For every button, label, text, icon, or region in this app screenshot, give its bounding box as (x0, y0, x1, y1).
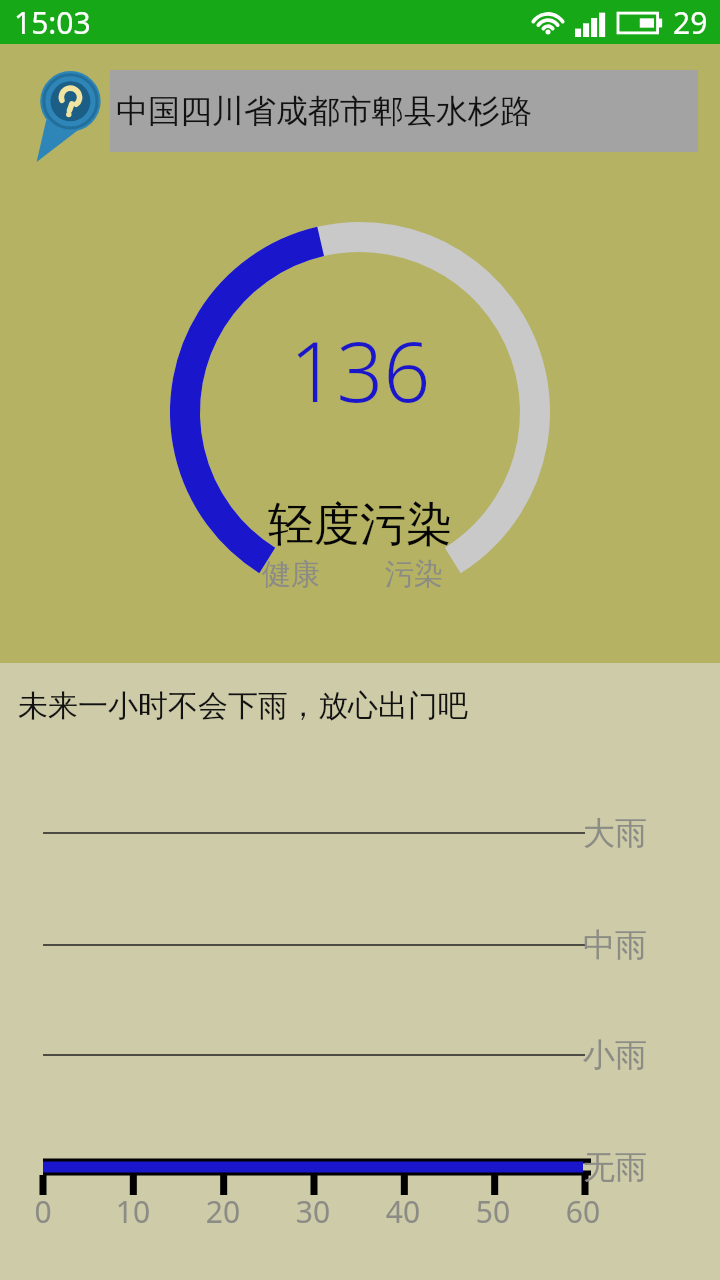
staticText: 污染 (385, 556, 443, 593)
button[interactable]: Location (33, 66, 105, 164)
staticText: 无雨 (583, 1147, 647, 1187)
staticText: 136 (170, 314, 550, 426)
staticText: 50 (471, 1191, 515, 1232)
staticText: 小雨 (583, 1035, 647, 1075)
staticText: 大雨 (583, 813, 647, 853)
staticText: 40 (381, 1191, 425, 1232)
staticText: 轻度污染 (170, 496, 550, 554)
staticText: 29 (673, 2, 708, 43)
staticText: 10 (111, 1191, 155, 1232)
staticText: 20 (201, 1191, 245, 1232)
staticText: 0 (21, 1191, 65, 1232)
staticText: 未来一小时不会下雨，放心出门吧 (18, 687, 468, 725)
button[interactable]: 中国四川省成都市郫县水杉路 (110, 70, 698, 152)
staticText: 30 (291, 1191, 335, 1232)
staticText: 60 (561, 1191, 605, 1232)
staticText: 15:03 (14, 2, 91, 43)
staticText: 健康 (262, 556, 320, 593)
staticText: 中国四川省成都市郫县水杉路 (116, 91, 532, 131)
staticText: 中雨 (583, 925, 647, 965)
